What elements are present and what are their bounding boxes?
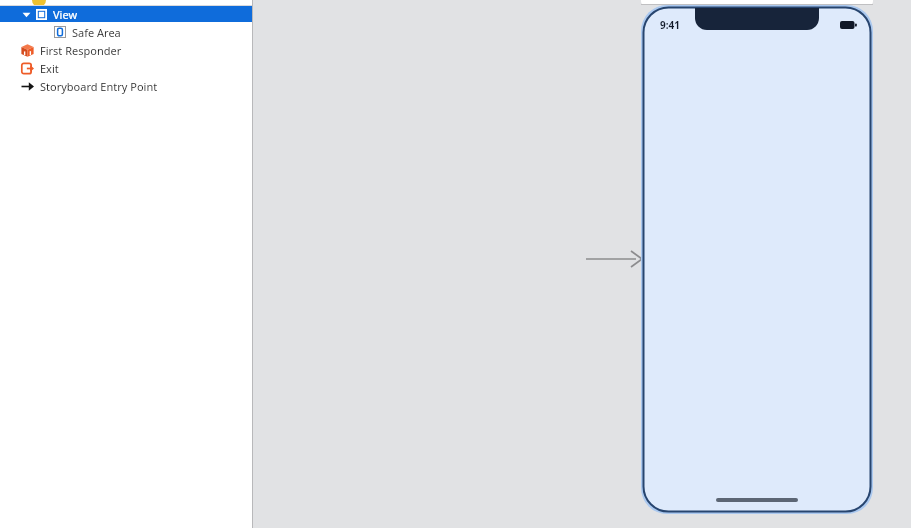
button[interactable]: Exit bbox=[0, 60, 252, 76]
other: Storyboard entry point arrow bbox=[586, 249, 642, 269]
staticText: Storyboard Entry Point bbox=[40, 79, 158, 94]
button[interactable]: Safe Area bbox=[0, 24, 252, 40]
button[interactable]: iPhone scene preview bbox=[641, 5, 873, 514]
staticText: First Responder bbox=[40, 43, 122, 58]
staticText: Safe Area bbox=[72, 25, 121, 40]
staticText: Exit bbox=[40, 61, 59, 76]
staticText: View bbox=[53, 7, 78, 22]
staticText: 9:41 bbox=[660, 18, 680, 32]
button[interactable]: View bbox=[0, 6, 252, 22]
button[interactable]: First Responder bbox=[0, 42, 252, 58]
button[interactable]: Storyboard Entry Point bbox=[0, 78, 252, 94]
